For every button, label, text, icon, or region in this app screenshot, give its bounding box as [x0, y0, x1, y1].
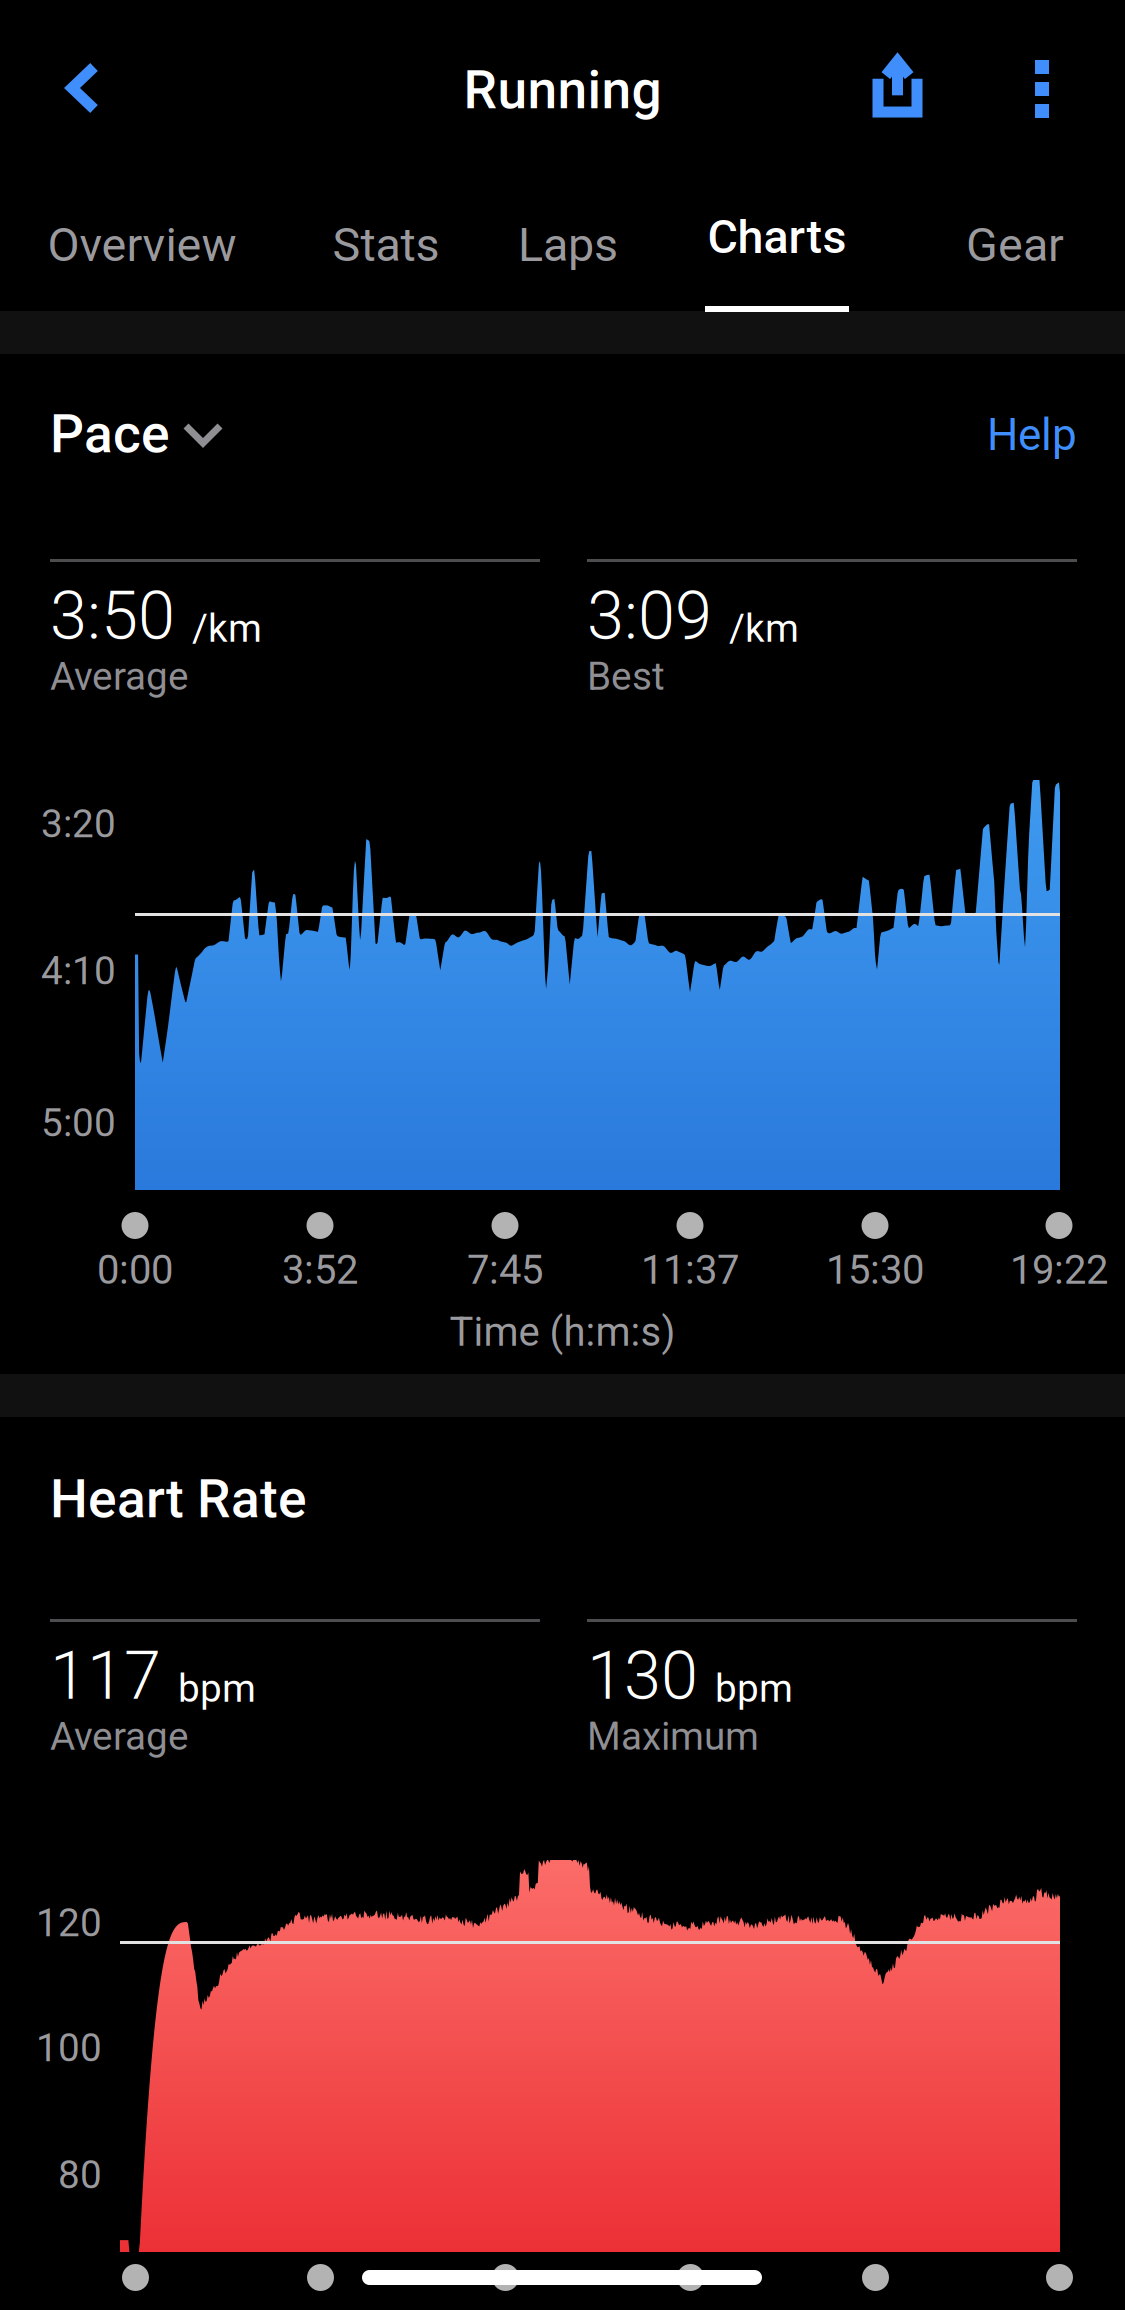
staticText: Average [50, 1714, 189, 1759]
staticText: Overview [47, 218, 236, 272]
staticText: Maximum [587, 1714, 759, 1759]
staticText: Gear [966, 218, 1064, 272]
staticText: 120 [36, 1900, 102, 1946]
staticText: Pace [50, 403, 170, 465]
button[interactable]: Help [877, 404, 1077, 466]
staticText: 7:45 [467, 1247, 543, 1293]
staticText: 0:00 [97, 1247, 173, 1293]
button[interactable]: Overview [12, 178, 272, 312]
button[interactable]: Gear [885, 178, 1125, 312]
staticText: Help [987, 409, 1077, 461]
staticText: 100 [36, 2025, 102, 2071]
button[interactable]: Pace [50, 403, 220, 465]
staticText: 3:52 [282, 1247, 358, 1293]
staticText: 11:37 [641, 1247, 739, 1293]
button[interactable]: Back [0, 12, 149, 164]
staticText: /km [192, 606, 262, 651]
button[interactable]: Stats [256, 178, 516, 312]
button[interactable]: Laps [438, 178, 698, 312]
staticText: /km [729, 606, 799, 651]
staticText: 130 [587, 1637, 698, 1715]
button[interactable]: Share [832, 14, 963, 158]
staticText: Average [50, 654, 189, 699]
staticText: Best [587, 654, 665, 699]
staticText: Running [463, 59, 661, 121]
staticText: Time (h:m:s) [449, 1309, 675, 1355]
staticText: 3:09 [587, 577, 712, 655]
staticText: Heart Rate [50, 1468, 307, 1530]
staticText: 117 [50, 1637, 161, 1715]
staticText: 19:22 [1010, 1247, 1108, 1293]
staticText: bpm [178, 1666, 256, 1711]
staticText: Stats [332, 218, 439, 272]
staticText: 3:50 [50, 577, 175, 655]
staticText: Charts [707, 210, 846, 264]
button[interactable]: Charts [647, 178, 907, 312]
staticText: bpm [715, 1666, 793, 1711]
staticText: 15:30 [826, 1247, 924, 1293]
staticText: 80 [58, 2152, 102, 2198]
staticText: Laps [518, 218, 618, 272]
staticText: 3:20 [41, 801, 116, 847]
staticText: 4:10 [41, 948, 116, 994]
button[interactable]: More options [989, 14, 1095, 164]
staticText: 5:00 [41, 1100, 116, 1146]
